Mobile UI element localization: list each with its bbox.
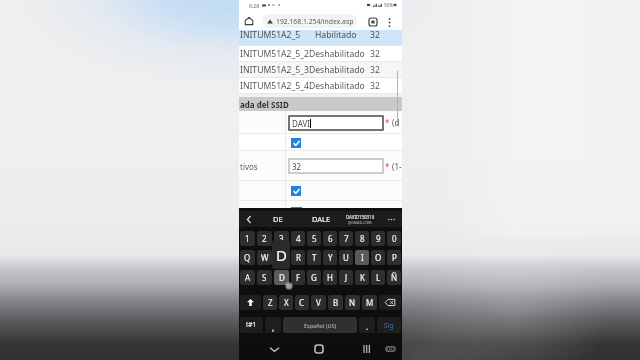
button[interactable]: Español (US) [283, 317, 357, 333]
button[interactable]: Checkbox checked [291, 207, 302, 214]
button[interactable]: DALE [311, 211, 331, 227]
button[interactable]: G [307, 270, 321, 285]
button[interactable]: V [311, 295, 326, 310]
button[interactable]: E [274, 250, 289, 265]
button[interactable]: 1 [240, 231, 255, 246]
button[interactable]: 192.168.1.254/index.asp [262, 14, 357, 28]
button[interactable]: DAVID150310 [343, 211, 377, 227]
button[interactable]: !#1 [240, 317, 263, 333]
staticText: C [299, 297, 305, 308]
button[interactable]: , [265, 317, 281, 333]
button[interactable]: Switch keyboard [382, 341, 398, 357]
staticText: 2 [262, 233, 267, 244]
button[interactable]: F [291, 270, 305, 285]
button[interactable]: Y [323, 250, 337, 265]
button[interactable]: Back [243, 213, 255, 225]
staticText: D [279, 272, 285, 283]
staticText: DE [273, 214, 283, 224]
button[interactable]: Sig [377, 317, 401, 333]
button[interactable]: N [345, 295, 360, 310]
button[interactable]: 9 [371, 231, 385, 246]
button[interactable]: U [339, 250, 353, 265]
staticText: H [327, 272, 333, 283]
staticText: P [392, 252, 397, 263]
button[interactable]: 0 [387, 231, 401, 246]
button[interactable]: 5 [307, 231, 321, 246]
button[interactable]: A [240, 270, 255, 285]
staticText: ada del SSID [240, 99, 289, 110]
staticText: J [345, 272, 348, 283]
button[interactable]: B [328, 295, 343, 310]
button[interactable]: L [371, 270, 385, 285]
button[interactable]: Tabs [366, 15, 380, 29]
button[interactable]: Checkbox checked [291, 186, 301, 196]
staticText: (d [390, 117, 400, 128]
button[interactable]: . [359, 317, 375, 333]
button[interactable]: 32 [289, 159, 383, 173]
staticText: Español (US) [304, 322, 337, 329]
staticText: * [385, 161, 390, 172]
button[interactable]: D [272, 240, 290, 269]
staticText: DALE [312, 214, 331, 224]
staticText: O [375, 252, 382, 263]
staticText: INITUM51A2_5 [240, 29, 301, 41]
staticText: Ñ [391, 272, 398, 283]
staticText: X [284, 297, 289, 308]
button[interactable]: 8 [355, 231, 369, 246]
staticText: !#1 [246, 320, 257, 330]
button[interactable]: 4 [291, 231, 305, 246]
button[interactable]: More options [382, 15, 396, 29]
staticText: , [272, 322, 275, 333]
button[interactable]: 2 [257, 231, 272, 246]
button[interactable]: R [291, 250, 305, 265]
staticText: R [296, 252, 301, 263]
button[interactable]: Hide keyboard [266, 341, 282, 357]
button[interactable]: DAVI [289, 116, 383, 130]
button[interactable]: Backspace [379, 295, 401, 310]
button[interactable]: Recents [358, 341, 374, 357]
button[interactable]: 7 [339, 231, 353, 246]
staticText: A [245, 272, 251, 283]
button[interactable]: K [355, 270, 369, 285]
staticText: . [366, 321, 369, 332]
button[interactable]: J [339, 270, 353, 285]
button[interactable]: Z [263, 295, 277, 310]
button[interactable]: S [257, 270, 272, 285]
button[interactable]: C [295, 295, 309, 310]
button[interactable]: More [386, 214, 397, 225]
staticText: 4 [296, 233, 301, 244]
button[interactable]: Shift [240, 295, 261, 310]
button[interactable]: X [279, 295, 293, 310]
button[interactable]: 6 [323, 231, 337, 246]
button[interactable]: W [257, 250, 272, 265]
button[interactable]: D [274, 270, 289, 285]
button[interactable]: INITUM51A2_5_4 [239, 78, 402, 94]
staticText: L [376, 272, 381, 283]
button[interactable]: Checkbox checked [291, 138, 301, 148]
button[interactable]: O [371, 250, 385, 265]
button[interactable]: Ñ [387, 270, 401, 285]
staticText: DAVID150310 [346, 214, 375, 220]
button[interactable]: INITUM51A2_5_3 [239, 62, 402, 78]
button[interactable]: M [362, 295, 377, 310]
staticText: T [312, 252, 317, 263]
button[interactable]: P [387, 250, 401, 265]
button[interactable]: INITUM51A2_5_2 [239, 46, 402, 62]
staticText: 32 [370, 29, 380, 41]
button[interactable]: DE [270, 211, 286, 227]
staticText: 9 [376, 233, 381, 244]
staticText: DAVI [292, 118, 310, 129]
button[interactable]: I [355, 250, 369, 265]
button[interactable]: Home [311, 341, 327, 357]
staticText: 32 [292, 161, 302, 172]
button[interactable]: INITUM51A2_5 [239, 30, 402, 46]
button[interactable]: T [307, 250, 321, 265]
staticText: Sig [384, 321, 394, 330]
button[interactable]: H [323, 270, 337, 285]
button[interactable]: 3 [274, 231, 289, 246]
staticText: 3 [279, 233, 284, 244]
staticText: K [360, 272, 365, 283]
staticText: @GMAIL.COM [348, 220, 372, 225]
button[interactable]: Q [240, 250, 255, 265]
button[interactable]: Home [242, 14, 256, 28]
